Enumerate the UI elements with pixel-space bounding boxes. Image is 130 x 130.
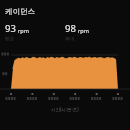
staticText: 최대 [65, 36, 74, 42]
staticText: 93 [5, 22, 16, 35]
button[interactable]: 케이던스 차트 [0, 48, 130, 106]
button[interactable]: 98 [65, 22, 125, 42]
staticText: 케이던스 [5, 7, 35, 16]
button[interactable]: 93 [5, 22, 65, 42]
staticText: rpm [18, 27, 29, 34]
staticText: 시간(시:분:초) [51, 106, 79, 112]
staticText: 98 [65, 22, 76, 35]
staticText: 평균 [5, 36, 14, 42]
button[interactable]: 케이던스 [0, 7, 130, 16]
staticText: rpm [78, 27, 89, 34]
